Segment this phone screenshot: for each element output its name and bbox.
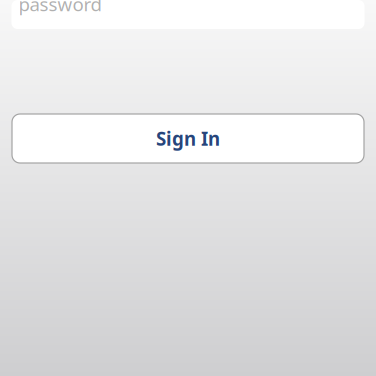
staticText: Sign In (156, 126, 220, 151)
button[interactable]: Sign In (12, 114, 364, 163)
staticText: password (18, 0, 101, 16)
